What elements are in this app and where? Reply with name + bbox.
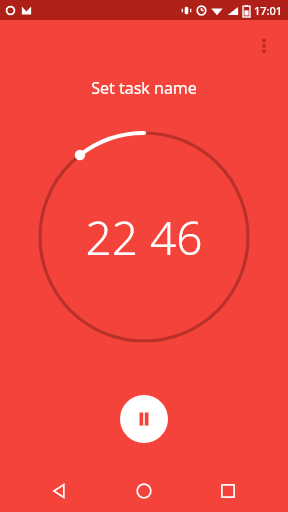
button[interactable]: Back — [36, 470, 84, 512]
button[interactable]: Pause — [120, 395, 168, 443]
staticText: 17:01 — [254, 3, 283, 18]
staticText: 22 46 — [85, 206, 203, 269]
button[interactable]: More options — [246, 28, 282, 64]
button[interactable]: Home — [120, 470, 168, 512]
button[interactable]: Recents — [204, 470, 252, 512]
button[interactable]: Set task name — [75, 73, 213, 103]
